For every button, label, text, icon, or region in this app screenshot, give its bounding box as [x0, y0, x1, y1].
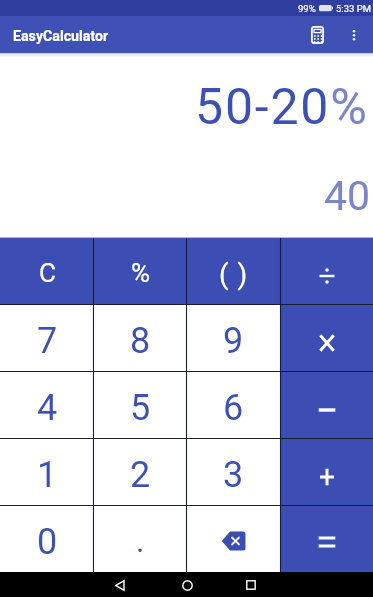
button[interactable]: 8: [94, 304, 187, 371]
staticText: .: [136, 522, 145, 560]
staticText: 4: [37, 387, 58, 429]
staticText: 40: [324, 172, 371, 220]
button[interactable]: [280, 237, 373, 304]
staticText: 50-20%: [195, 78, 369, 137]
button[interactable]: 5: [94, 371, 187, 438]
button[interactable]: 1: [0, 438, 94, 505]
button[interactable]: %: [94, 237, 187, 304]
button[interactable]: [300, 18, 334, 52]
button[interactable]: [108, 573, 132, 597]
staticText: 99%: [298, 3, 316, 14]
button[interactable]: 7: [0, 304, 94, 371]
staticText: ( ): [219, 258, 249, 291]
staticText: 6: [223, 387, 244, 429]
button[interactable]: 9: [187, 304, 280, 371]
staticText: C: [39, 258, 56, 288]
staticText: 8: [130, 320, 151, 362]
button[interactable]: .: [94, 505, 187, 572]
button[interactable]: [187, 505, 280, 572]
button[interactable]: [280, 505, 373, 572]
staticText: 0: [37, 521, 58, 563]
staticText: %: [131, 258, 151, 288]
staticText: 1: [37, 454, 58, 496]
staticText: 2: [130, 454, 151, 496]
button[interactable]: 6: [187, 371, 280, 438]
button[interactable]: C: [0, 237, 94, 304]
button[interactable]: [342, 23, 366, 47]
staticText: 5:33 PM: [336, 3, 371, 14]
button[interactable]: 4: [0, 371, 94, 438]
button[interactable]: [280, 371, 373, 438]
button[interactable]: [239, 573, 263, 597]
button[interactable]: 3: [187, 438, 280, 505]
staticText: 7: [37, 320, 58, 362]
button[interactable]: [280, 304, 373, 371]
button[interactable]: 2: [94, 438, 187, 505]
staticText: 3: [223, 454, 244, 496]
staticText: EasyCalculator: [13, 28, 109, 45]
button[interactable]: [175, 573, 199, 597]
button[interactable]: [280, 438, 373, 505]
staticText: 9: [223, 320, 244, 362]
button[interactable]: ( ): [187, 237, 280, 304]
staticText: 5: [130, 387, 151, 429]
button[interactable]: 0: [0, 505, 94, 572]
